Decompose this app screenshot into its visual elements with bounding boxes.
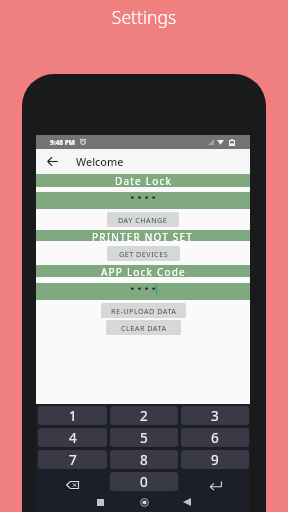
staticText: Welcome <box>76 154 124 169</box>
button[interactable]: 6 <box>181 428 249 447</box>
button[interactable]: 1 <box>38 406 107 425</box>
button[interactable]: Backspace <box>38 472 107 491</box>
staticText: 8 <box>140 451 148 469</box>
staticText: 0 <box>140 473 148 491</box>
button[interactable]: 2 <box>110 406 178 425</box>
button[interactable]: RE-UPLOAD DATA <box>101 303 186 318</box>
button[interactable]: Enter <box>181 472 249 491</box>
button[interactable]: 4 <box>38 428 107 447</box>
staticText: 1 <box>69 407 77 425</box>
button[interactable]: Home <box>133 492 155 512</box>
staticText: 3 <box>211 407 219 425</box>
button[interactable]: DAY CHANGE <box>107 212 179 227</box>
staticText: 4 <box>69 429 77 447</box>
button[interactable]: PRINTER NOT SET <box>36 230 250 241</box>
button[interactable]: 9 <box>181 450 249 469</box>
staticText: PRINTER NOT SET <box>92 230 194 241</box>
button[interactable]: 3 <box>181 406 249 425</box>
button[interactable]: CLEAR DATA <box>106 320 181 335</box>
button[interactable]: 0 <box>110 472 178 491</box>
staticText: 9 <box>211 451 219 469</box>
button[interactable]: 5 <box>110 428 178 447</box>
staticText: 5 <box>140 429 148 447</box>
staticText: DAY CHANGE <box>118 215 168 225</box>
staticText: GET DEVICES <box>119 249 169 259</box>
staticText: Settings <box>0 5 288 29</box>
button[interactable] <box>36 192 250 209</box>
button[interactable]: APP Lock Code <box>36 265 250 277</box>
staticText: Date Lock <box>115 174 172 187</box>
button[interactable]: 8 <box>110 450 178 469</box>
staticText: 2 <box>140 407 148 425</box>
button[interactable]: Recents <box>89 492 111 512</box>
staticText: 6 <box>211 429 219 447</box>
button[interactable]: Back <box>45 154 60 169</box>
button[interactable]: 7 <box>38 450 107 469</box>
button[interactable]: Back <box>176 492 198 512</box>
button[interactable]: Date Lock <box>36 174 250 187</box>
button[interactable] <box>36 283 250 300</box>
staticText: APP Lock Code <box>101 265 186 277</box>
button[interactable]: GET DEVICES <box>107 246 180 261</box>
staticText: CLEAR DATA <box>121 323 167 333</box>
staticText: 9:48 PM <box>50 138 75 147</box>
staticText: RE-UPLOAD DATA <box>111 306 177 316</box>
staticText: 7 <box>69 451 77 469</box>
